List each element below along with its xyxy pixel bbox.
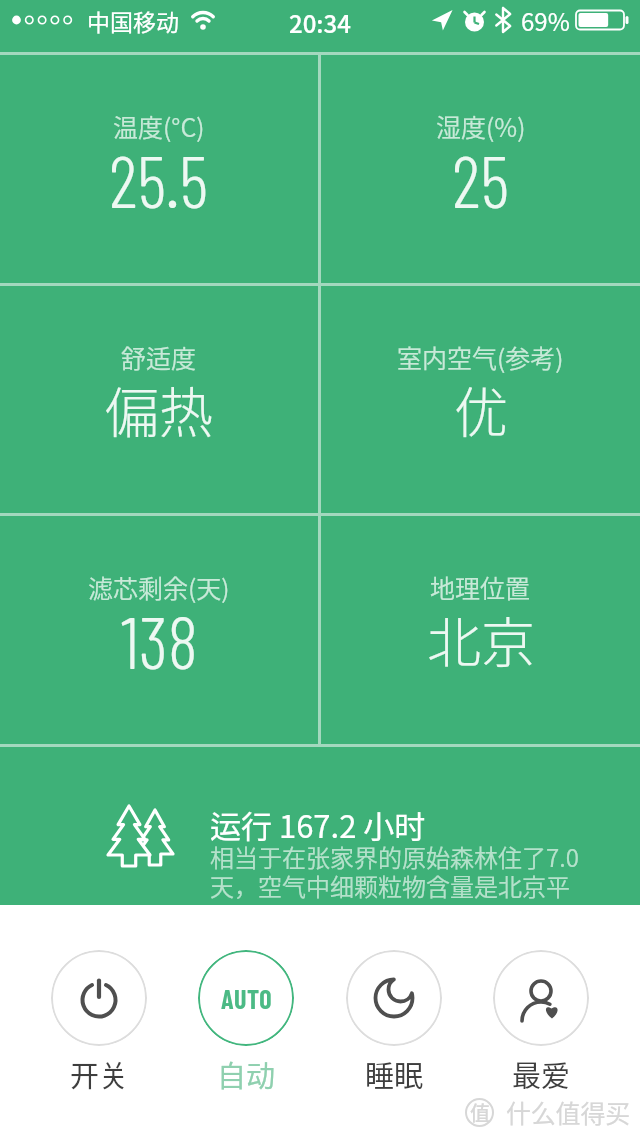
button[interactable]: AUTO <box>198 950 294 1046</box>
staticText: 最爱 <box>512 1053 571 1095</box>
button[interactable]: 室内空气(参考) <box>321 286 640 513</box>
staticText: 舒适度 <box>121 339 197 375</box>
staticText: 运行 167.2 小时 <box>210 802 426 847</box>
staticText: 20:34 <box>289 5 351 40</box>
staticText: 地理位置 <box>430 569 531 605</box>
staticText: 中国移动 <box>87 4 179 37</box>
staticText: 滤芯剩余(天) <box>88 569 230 605</box>
staticText: 优 <box>454 370 508 448</box>
button[interactable]: 舒适度 <box>0 286 318 513</box>
staticText: 偏热 <box>105 370 213 448</box>
staticText: 自动 <box>217 1053 276 1095</box>
staticText: 北京 <box>427 600 535 678</box>
button[interactable]: 温度(°C) <box>0 55 318 283</box>
button[interactable]: 湿度(%) <box>321 55 640 283</box>
staticText: 25.5 <box>109 136 209 222</box>
button[interactable]: 滤芯剩余(天) <box>0 516 318 744</box>
button[interactable] <box>51 950 147 1046</box>
staticText: 什么值得买 <box>506 1094 631 1130</box>
button[interactable] <box>346 950 442 1046</box>
staticText: AUTO <box>221 983 272 1014</box>
staticText: 69% <box>521 3 570 38</box>
staticText: 25 <box>452 136 510 222</box>
staticText: 睡眠 <box>365 1053 424 1095</box>
staticText: 值 <box>470 1098 490 1127</box>
staticText: 138 <box>121 597 198 683</box>
staticText: 开关 <box>70 1053 129 1095</box>
staticText: 温度(°C) <box>113 108 205 144</box>
staticText: 湿度(%) <box>436 108 526 144</box>
button[interactable]: 地理位置 <box>321 516 640 744</box>
button[interactable] <box>493 950 589 1046</box>
staticText: 室内空气(参考) <box>397 339 564 375</box>
staticText: 相当于在张家界的原始森林住了7.0 天，空气中细颗粒物含量是北京平 <box>210 839 579 903</box>
